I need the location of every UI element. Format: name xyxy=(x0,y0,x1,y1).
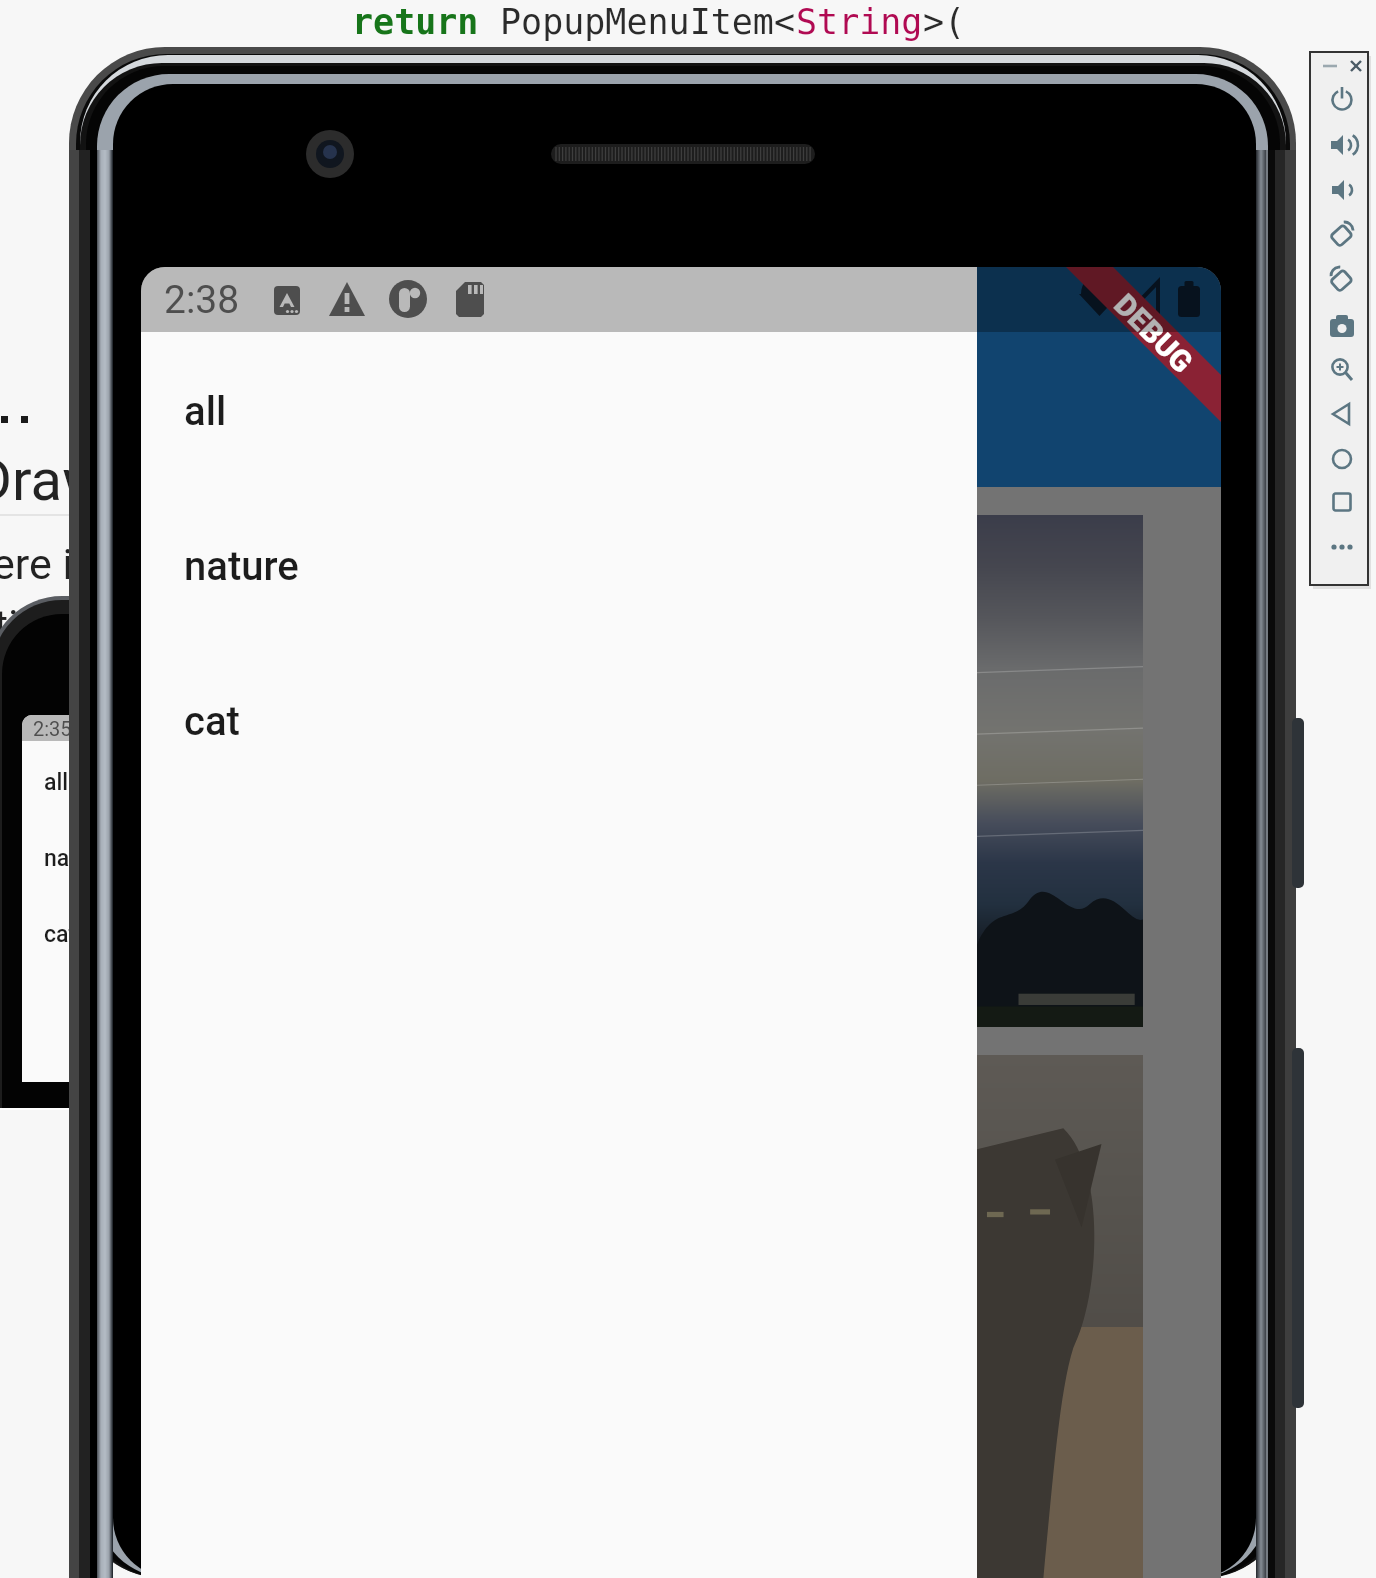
button[interactable]: Volume up xyxy=(1324,127,1360,163)
staticText: ti xyxy=(0,600,19,650)
staticText: 2:38 xyxy=(164,277,240,323)
staticText: cat xyxy=(184,698,240,745)
staticText: String xyxy=(796,2,923,43)
staticText: cat xyxy=(44,921,77,948)
button[interactable]: Minimize xyxy=(1318,54,1342,78)
staticText: Draw xyxy=(0,446,106,514)
button[interactable]: Take screenshot xyxy=(1324,308,1360,344)
staticText: all xyxy=(44,769,69,796)
button[interactable]: Power xyxy=(1324,80,1360,116)
button[interactable]: More xyxy=(1324,529,1360,565)
staticText: nature xyxy=(184,543,299,590)
button[interactable]: Rotate right xyxy=(1324,261,1360,297)
staticText: ere is xyxy=(0,539,96,589)
staticText: DEBUG xyxy=(1107,287,1200,380)
staticText: nat xyxy=(44,845,77,872)
button[interactable]: Volume down xyxy=(1324,172,1360,208)
button[interactable]: Close xyxy=(1344,54,1368,78)
button[interactable]: Overview xyxy=(1324,484,1360,520)
staticText: return xyxy=(352,2,500,43)
staticText: all xyxy=(184,388,227,435)
button[interactable]: all xyxy=(141,361,977,461)
button[interactable]: nature xyxy=(141,516,977,616)
button[interactable]: Zoom xyxy=(1324,352,1360,388)
staticText: >( xyxy=(923,2,966,43)
staticText: PopupMenuItem< xyxy=(500,2,796,43)
staticText: 2:35 xyxy=(33,717,72,740)
button[interactable]: cat xyxy=(141,671,977,771)
button[interactable]: Home xyxy=(1324,441,1360,477)
button[interactable]: Rotate left xyxy=(1324,216,1360,252)
button[interactable]: Back xyxy=(1324,396,1360,432)
